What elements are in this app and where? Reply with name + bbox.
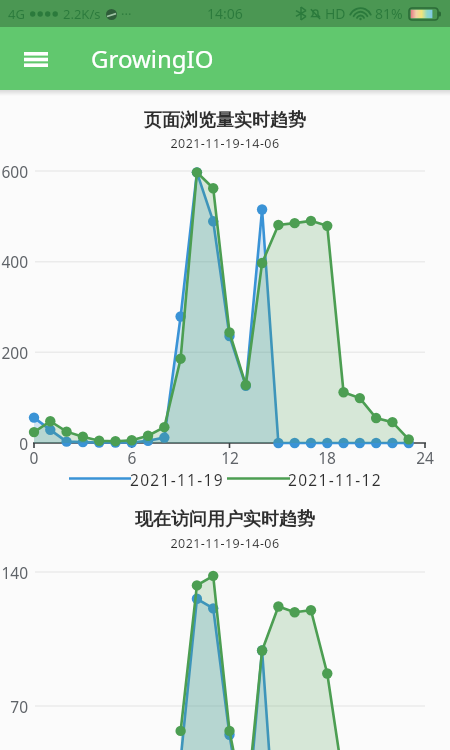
staticText: 2021-11-19	[130, 469, 224, 490]
staticText: 70	[0, 696, 28, 717]
staticText: 14:06	[207, 4, 243, 23]
staticText: 24	[411, 447, 439, 468]
staticText: 6	[118, 447, 146, 468]
staticText: 现在访问用户实时趋势	[0, 508, 450, 531]
staticText: ···	[121, 5, 132, 23]
staticText: 2021-11-19-14-06	[0, 535, 450, 552]
staticText: GrowingIO	[91, 42, 214, 75]
staticText: 600	[0, 161, 28, 182]
button[interactable]: Open navigation menu	[12, 35, 60, 83]
staticText: 140	[0, 562, 28, 583]
staticText: 2.2K/s	[63, 5, 101, 23]
staticText: 4G	[8, 5, 25, 23]
staticText: 2021-11-12	[288, 469, 382, 490]
staticText: 12	[216, 447, 244, 468]
staticText: 0	[0, 433, 28, 454]
staticText: 0	[20, 447, 48, 468]
staticText: 81%	[375, 4, 403, 23]
staticText: 200	[0, 342, 28, 363]
staticText: 400	[0, 251, 28, 272]
staticText: 2021-11-19-14-06	[0, 135, 450, 152]
staticText: 18	[313, 447, 341, 468]
staticText: HD	[325, 4, 346, 23]
staticText: 页面浏览量实时趋势	[0, 109, 450, 132]
